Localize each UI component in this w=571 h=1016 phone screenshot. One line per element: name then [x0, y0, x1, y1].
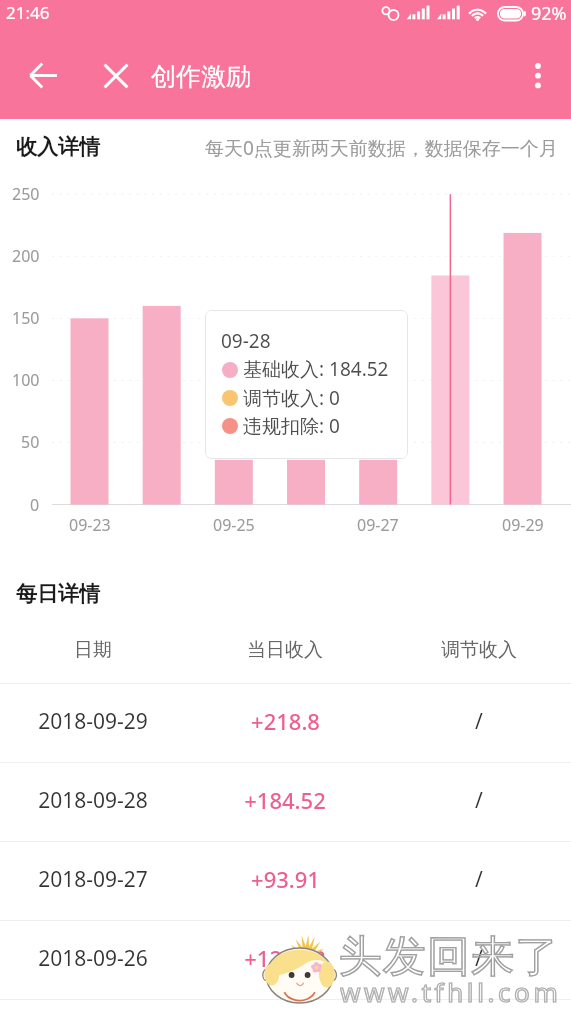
button[interactable] [0, 763, 571, 841]
staticText: 2018-09-29 [38, 707, 148, 736]
staticText: +218.8 [251, 706, 320, 736]
staticText: 每日详情 [16, 581, 100, 607]
button[interactable] [0, 921, 571, 999]
staticText: 21:46 [6, 1, 50, 24]
staticText: / [475, 786, 483, 815]
staticText: +93.91 [251, 864, 320, 894]
staticText: 当日收入 [247, 638, 323, 662]
staticText: 违规扣除: 0 [243, 413, 340, 439]
staticText: 调节收入 [441, 638, 517, 662]
staticText: 50 [21, 431, 40, 453]
staticText: / [475, 707, 483, 736]
button[interactable]: Back [15, 47, 72, 104]
staticText: 09-23 [69, 514, 111, 536]
button[interactable] [0, 684, 571, 762]
staticText: 创作激励 [151, 61, 251, 92]
staticText: 250 [12, 183, 40, 205]
staticText: 09-27 [357, 514, 399, 536]
staticText: 日期 [74, 638, 112, 662]
staticText: 92% [531, 1, 567, 26]
staticText: 100 [12, 369, 40, 391]
button[interactable]: Close [88, 48, 143, 103]
staticText: 09-28 [221, 328, 271, 354]
staticText: 2018-09-27 [38, 865, 148, 894]
staticText: 0 [30, 494, 40, 516]
staticText: 2018-09-26 [38, 944, 148, 973]
staticText: 每天0点更新两天前数据，数据保存一个月 [205, 135, 558, 161]
staticText: 200 [12, 245, 40, 267]
staticText: / [475, 944, 483, 973]
staticText: 头发回来了 [338, 930, 559, 982]
staticText: +120.63 [244, 943, 326, 973]
staticText: www.tfhll.com [340, 974, 562, 1004]
staticText: 150 [12, 307, 40, 329]
staticText: 2018-09-28 [38, 786, 148, 815]
staticText: 09-25 [213, 514, 255, 536]
staticText: 收入详情 [16, 134, 100, 160]
button[interactable] [0, 842, 571, 920]
button[interactable]: More options [510, 48, 566, 103]
staticText: 09-29 [502, 514, 544, 536]
staticText: 调节收入: 0 [243, 385, 340, 411]
staticText: / [475, 865, 483, 894]
staticText: +184.52 [244, 785, 326, 815]
staticText: 基础收入: 184.52 [243, 356, 389, 382]
